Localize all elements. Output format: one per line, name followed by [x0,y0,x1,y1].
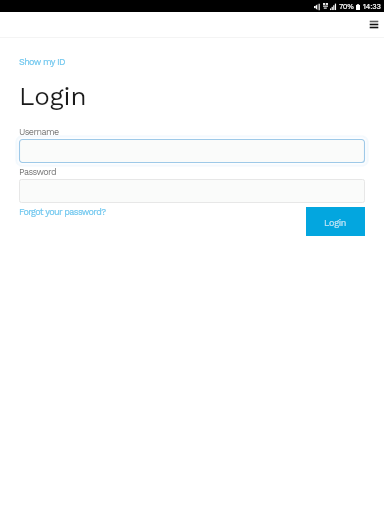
staticText: 70% [339,2,354,11]
button[interactable]: Login [306,207,365,236]
button[interactable]: Open navigation menu [365,16,383,34]
staticText: Username [19,127,59,138]
button[interactable]: Forgot your password? [19,207,106,218]
staticText: Login [19,81,87,111]
button[interactable] [16,136,368,166]
button[interactable]: Show my ID [19,57,65,68]
staticText: 14:33 [363,2,381,11]
staticText: Login [324,218,347,229]
button[interactable] [19,179,365,203]
staticText: Password [19,167,56,178]
